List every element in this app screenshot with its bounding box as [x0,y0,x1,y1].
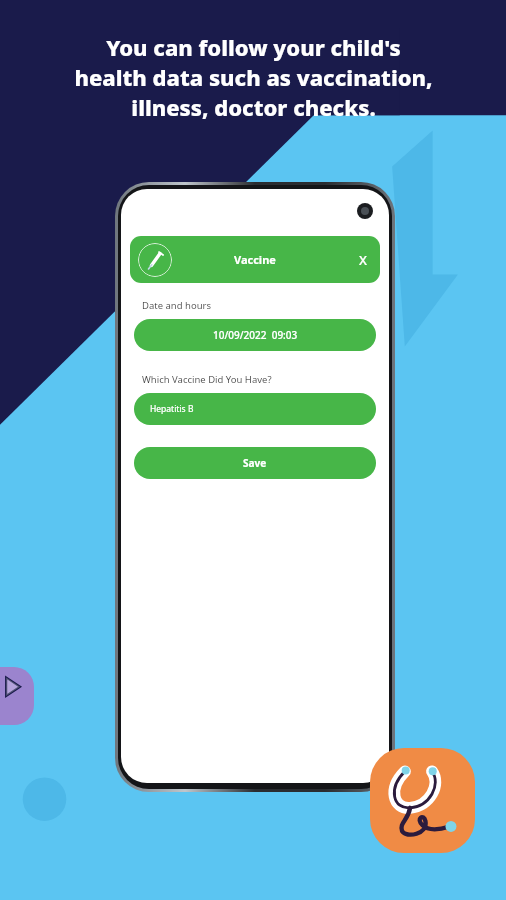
staticText: You can follow your child's health data … [74,32,433,122]
button[interactable]: Close [346,243,380,277]
staticText: Hepatitis B [150,403,194,415]
staticText: Vaccine [234,252,276,267]
staticText: Which Vaccine Did You Have? [142,373,272,386]
staticText: Date and hours [142,299,211,312]
button[interactable]: 10/09/2022 09:03 [134,319,376,351]
staticText: 10/09/2022 09:03 [213,328,298,342]
button[interactable]: Hepatitis B [134,393,376,425]
staticText: X [359,251,367,269]
button[interactable]: App icon: stethoscope [370,748,475,853]
staticText: Save [243,456,267,470]
button[interactable]: Vaccine [138,243,172,277]
button[interactable]: Save [134,447,376,479]
